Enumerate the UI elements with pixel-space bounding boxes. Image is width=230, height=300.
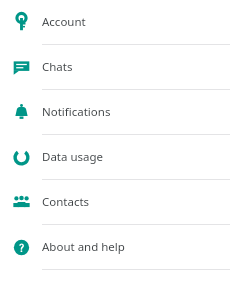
button[interactable]: Account [0, 0, 230, 44]
staticText: About and help [42, 239, 125, 255]
staticText: Data usage [42, 149, 104, 165]
button[interactable]: About and help [0, 225, 230, 269]
staticText: Contacts [42, 194, 90, 210]
staticText: Account [42, 14, 86, 30]
button[interactable]: Data usage [0, 135, 230, 179]
button[interactable]: Notifications [0, 90, 230, 134]
button[interactable]: Contacts [0, 180, 230, 224]
staticText: Notifications [42, 104, 111, 120]
button[interactable]: Chats [0, 45, 230, 89]
staticText: Chats [42, 59, 73, 75]
